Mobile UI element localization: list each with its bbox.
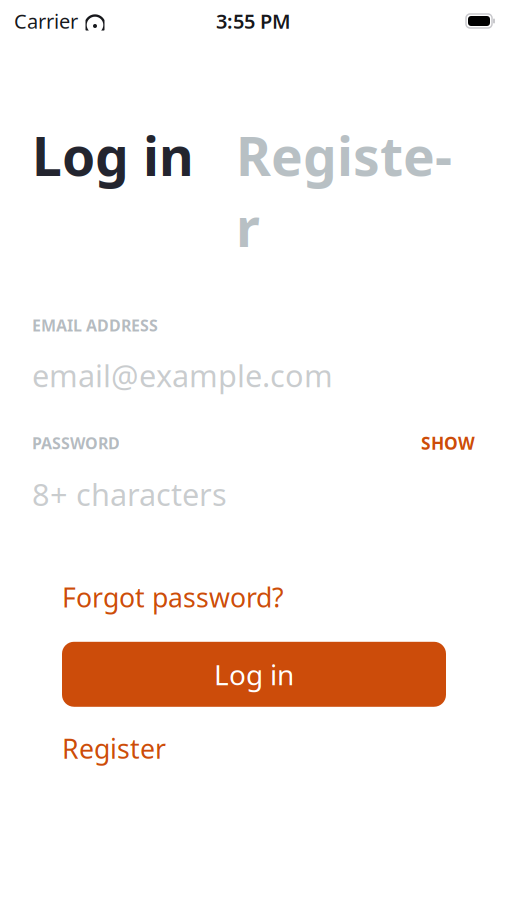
button[interactable]: Log in [32, 120, 194, 191]
staticText: email@example.com [32, 355, 333, 396]
button[interactable]: Log in [62, 642, 446, 707]
staticText: Log in [32, 120, 194, 191]
staticText: Forgot password? [62, 579, 284, 615]
staticText: Register [62, 731, 166, 766]
button[interactable]: Register [62, 731, 166, 766]
staticText: Carrier [14, 8, 78, 34]
staticText: Log in [214, 656, 294, 693]
button[interactable]: Forgot password? [62, 579, 284, 615]
button[interactable]: Register [236, 120, 452, 262]
button[interactable]: SHOW [421, 432, 475, 455]
staticText: EMAIL ADDRESS [32, 315, 158, 336]
staticText: Register [236, 120, 452, 262]
staticText: SHOW [421, 432, 475, 455]
staticText: 8+ characters [32, 474, 227, 514]
staticText: PASSWORD [32, 432, 120, 454]
staticText: 3:55 PM [216, 8, 291, 34]
